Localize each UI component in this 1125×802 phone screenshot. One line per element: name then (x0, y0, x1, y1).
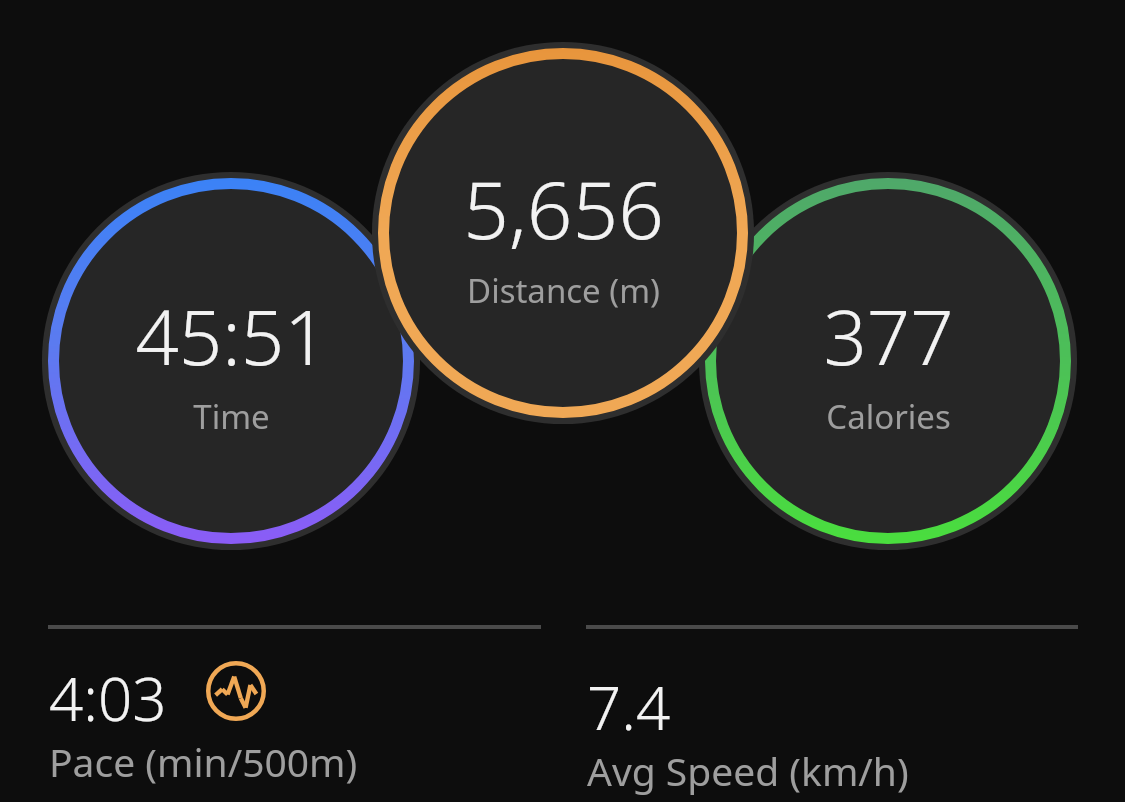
button[interactable]: 7.4 (582, 648, 1082, 798)
staticText: 7.4 (587, 666, 671, 748)
button[interactable]: Calories 377 (718, 191, 1058, 531)
staticText: 45:51 (135, 284, 328, 388)
button[interactable]: Time 45:51 (61, 191, 401, 531)
staticText: Pace (min/500m) (49, 735, 358, 788)
button[interactable]: Distance 5,656 meters (391, 61, 735, 405)
staticText: 377 (823, 284, 954, 388)
staticText: Distance (m) (467, 268, 660, 313)
staticText: Calories (826, 394, 951, 439)
staticText: 5,656 (463, 153, 664, 262)
staticText: Avg Speed (km/h) (587, 744, 909, 797)
staticText: 4:03 (49, 657, 167, 739)
button[interactable]: 4:03 (44, 648, 544, 798)
staticText: Time (193, 394, 270, 439)
